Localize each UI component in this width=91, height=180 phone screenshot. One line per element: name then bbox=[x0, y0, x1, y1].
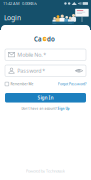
button[interactable]: Show password bbox=[75, 68, 83, 74]
staticText: Login bbox=[4, 13, 21, 22]
staticText: Password * bbox=[17, 67, 45, 74]
staticText: 11:42 bbox=[3, 1, 12, 6]
staticText: Sign Up bbox=[58, 106, 70, 111]
staticText: Forgot Password? bbox=[58, 82, 86, 86]
staticText: AM bbox=[12, 1, 20, 6]
staticText: Powered by Technotask bbox=[26, 168, 65, 174]
button[interactable]: Remember Me bbox=[5, 82, 34, 86]
staticText: Mobile No. * bbox=[17, 51, 46, 58]
button[interactable]: Sign Up bbox=[58, 106, 70, 111]
staticText: do bbox=[47, 35, 55, 43]
staticText: Ca bbox=[34, 35, 42, 43]
staticText: 0.00KB/s bbox=[20, 1, 37, 6]
staticText: Remember Me bbox=[11, 82, 34, 86]
staticText: Don't have an account? bbox=[21, 106, 56, 111]
button[interactable]: Forgot Password? bbox=[58, 82, 86, 86]
button[interactable]: Sign In bbox=[5, 93, 86, 102]
staticText: Sign In bbox=[37, 94, 53, 101]
